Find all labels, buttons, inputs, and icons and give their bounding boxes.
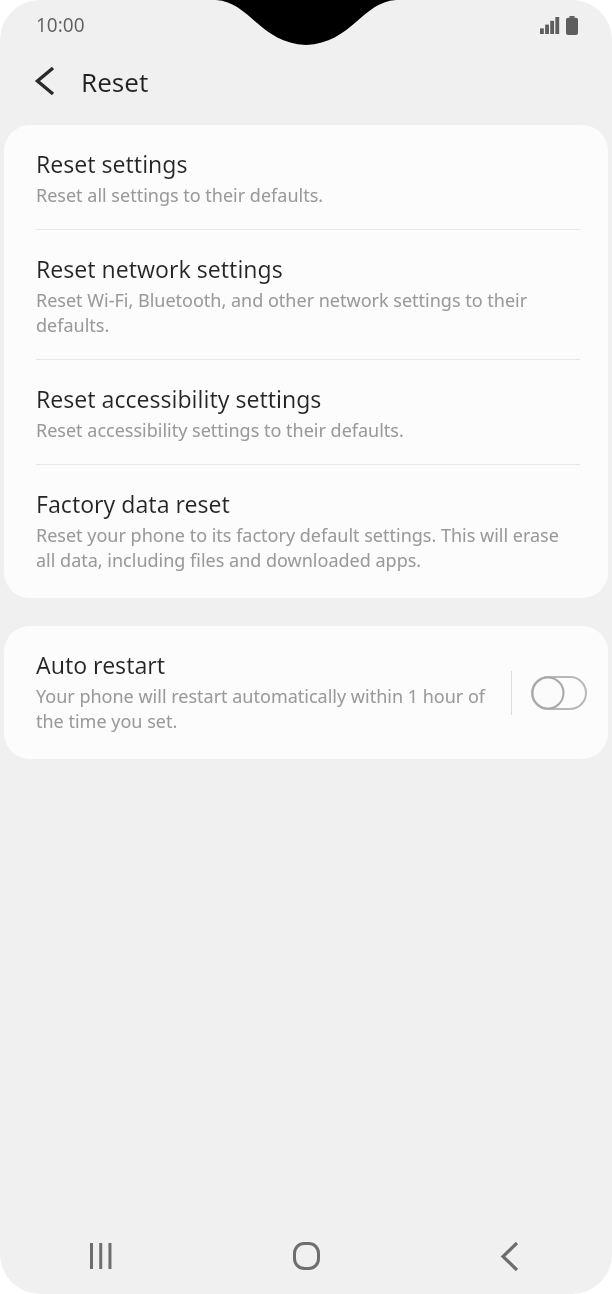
button[interactable]: Recent apps — [0, 1218, 204, 1294]
staticText: Reset settings — [36, 149, 188, 179]
button[interactable]: Home — [204, 1218, 408, 1294]
staticText: Reset accessibility settings — [36, 384, 322, 414]
button[interactable]: Auto restart toggle — [530, 670, 588, 716]
button[interactable]: Reset accessibility settings — [4, 360, 608, 464]
staticText: Reset all settings to their defaults. — [36, 182, 324, 207]
button[interactable]: Reset settings — [4, 125, 608, 229]
staticText: 10:00 — [36, 12, 85, 38]
staticText: Reset — [81, 64, 149, 99]
staticText: Reset your phone to its factory default … — [36, 522, 576, 572]
button[interactable]: Back — [408, 1218, 612, 1294]
staticText: Your phone will restart automatically wi… — [36, 683, 499, 733]
staticText: Auto restart — [36, 650, 166, 680]
button[interactable]: Back — [22, 58, 68, 104]
button[interactable]: Auto restart — [4, 626, 608, 759]
button[interactable]: Reset network settings — [4, 230, 608, 359]
staticText: Reset accessibility settings to their de… — [36, 417, 404, 442]
button[interactable]: Factory data reset — [4, 465, 608, 598]
staticText: Reset Wi-Fi, Bluetooth, and other networ… — [36, 287, 576, 337]
staticText: Reset network settings — [36, 254, 283, 284]
staticText: Factory data reset — [36, 489, 230, 519]
